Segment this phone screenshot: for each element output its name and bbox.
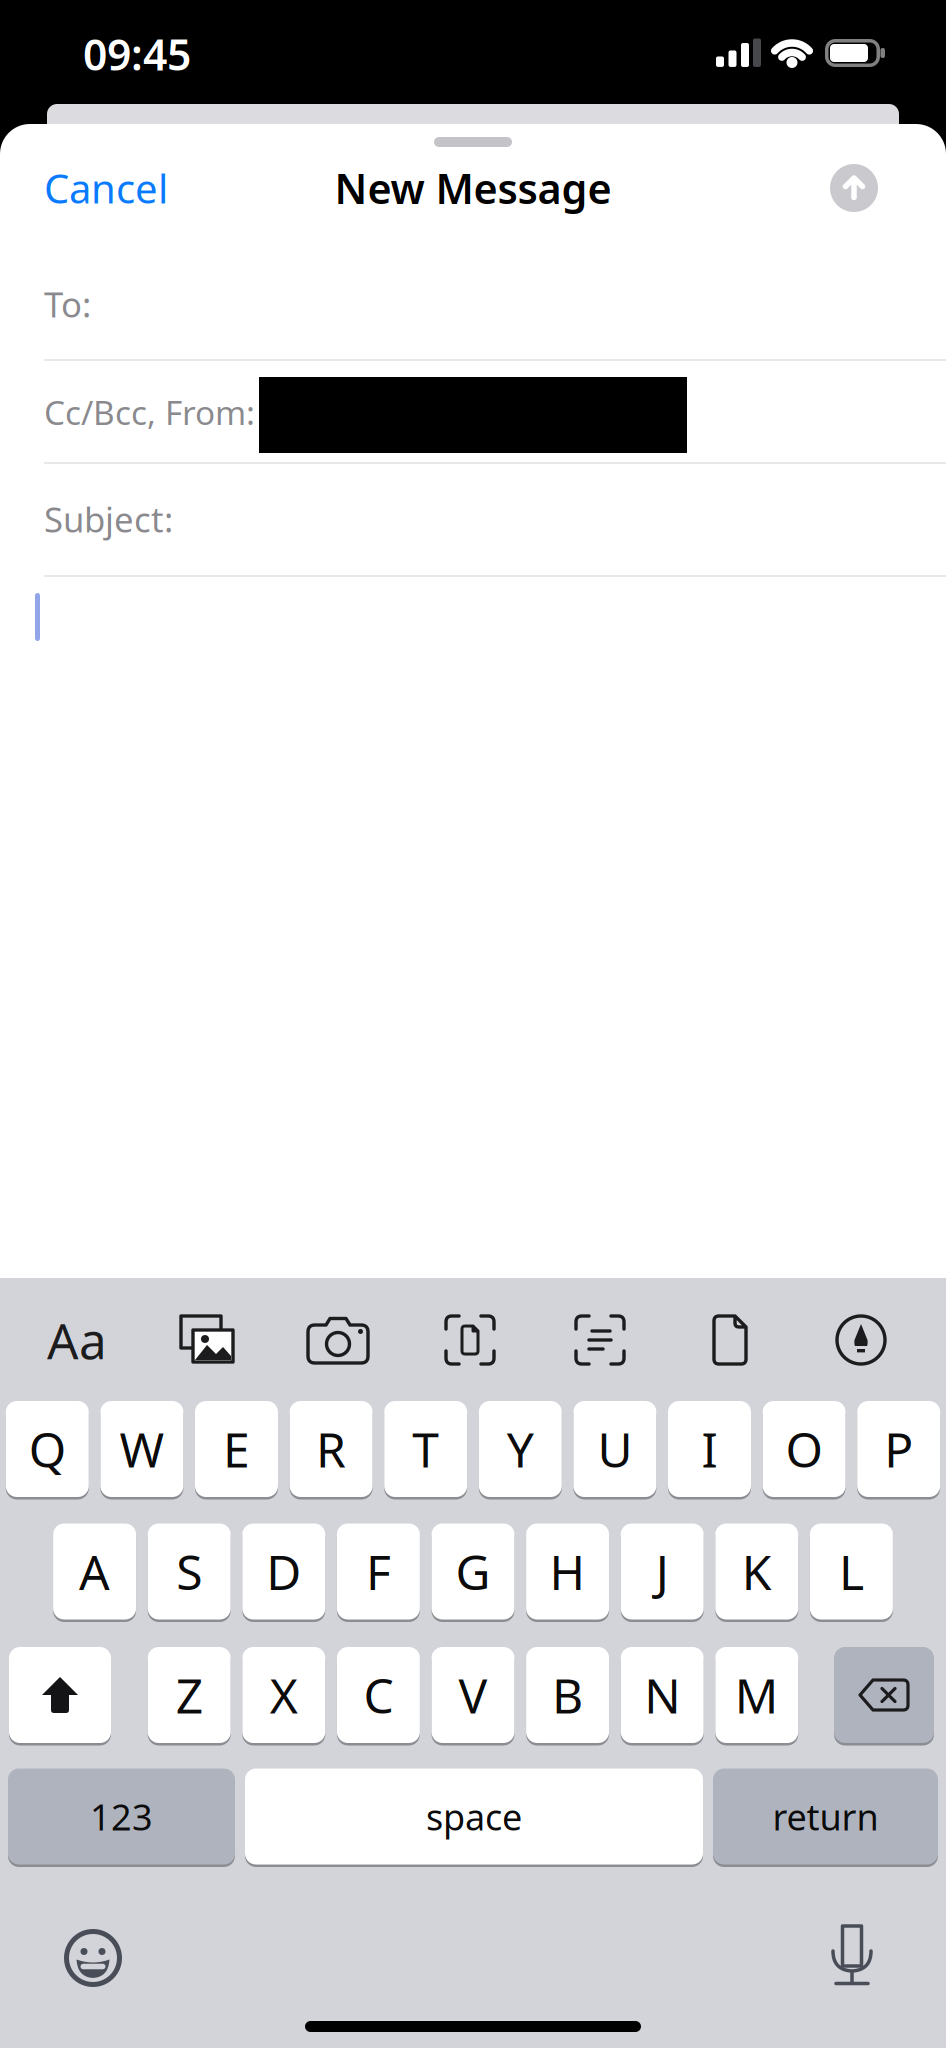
button[interactable]: Subject: [44, 496, 464, 542]
button[interactable]: Attach File [702, 1311, 758, 1369]
staticText: N [644, 1663, 680, 1727]
button[interactable]: Cancel [44, 161, 344, 214]
button[interactable]: I [668, 1399, 751, 1498]
staticText: To: [44, 281, 91, 327]
button[interactable]: G [431, 1522, 514, 1621]
button[interactable]: Send [830, 164, 878, 212]
staticText: R [316, 1417, 346, 1481]
staticText: New Message [334, 161, 611, 215]
staticText: K [742, 1540, 772, 1603]
button[interactable]: To: [44, 281, 464, 327]
button[interactable]: R [290, 1399, 373, 1498]
button[interactable]: P [857, 1399, 940, 1498]
button[interactable]: Scan Text [572, 1312, 628, 1368]
staticText: S [176, 1540, 202, 1603]
staticText: G [455, 1540, 490, 1603]
button[interactable]: B [526, 1645, 609, 1744]
staticText: M [735, 1663, 779, 1727]
button[interactable]: Cc/Bcc, From: [44, 390, 464, 434]
staticText: return [772, 1793, 878, 1840]
button[interactable]: W [100, 1399, 183, 1498]
button[interactable]: D [242, 1522, 325, 1621]
button[interactable]: Emoji [61, 1926, 125, 1990]
button[interactable]: Y [479, 1399, 562, 1498]
staticText: Subject: [44, 496, 173, 542]
staticText: D [266, 1540, 301, 1603]
button[interactable]: Q [6, 1399, 89, 1498]
button[interactable]: L [810, 1522, 893, 1621]
button[interactable]: Scan Document [442, 1312, 498, 1368]
button[interactable]: J [621, 1522, 704, 1621]
staticText: W [119, 1417, 164, 1481]
button[interactable]: Insert Photo [175, 1312, 239, 1368]
button[interactable]: F [337, 1522, 420, 1621]
staticText: I [701, 1417, 717, 1481]
staticText: 123 [90, 1793, 153, 1840]
button[interactable]: U [573, 1399, 656, 1498]
button[interactable]: V [431, 1645, 514, 1744]
staticText: O [786, 1417, 823, 1481]
button[interactable]: space [245, 1767, 703, 1866]
staticText: P [884, 1417, 913, 1481]
button[interactable]: M [715, 1645, 798, 1744]
button[interactable]: Delete [834, 1645, 934, 1744]
button[interactable]: O [763, 1399, 846, 1498]
button[interactable]: Z [148, 1645, 231, 1744]
button[interactable]: Text Formatting [47, 1307, 107, 1373]
staticText: Q [29, 1417, 66, 1481]
staticText: F [366, 1540, 391, 1603]
button[interactable]: Shift [9, 1645, 111, 1744]
button[interactable]: C [337, 1645, 420, 1744]
staticText: Y [507, 1417, 534, 1481]
staticText: Cc/Bcc, From: [44, 390, 255, 434]
staticText: L [839, 1540, 864, 1603]
button[interactable]: T [384, 1399, 467, 1498]
staticText: E [223, 1417, 250, 1481]
staticText: 09:45 [83, 26, 191, 82]
staticText: space [426, 1793, 522, 1840]
button[interactable]: 123 [8, 1767, 235, 1866]
staticText: H [550, 1540, 586, 1603]
staticText: U [597, 1417, 632, 1481]
button[interactable]: A [53, 1522, 136, 1621]
staticText: A [79, 1540, 110, 1603]
staticText: C [363, 1663, 393, 1727]
button[interactable]: return [713, 1767, 938, 1866]
button[interactable]: N [621, 1645, 704, 1744]
staticText: Aa [47, 1307, 107, 1373]
button[interactable]: E [195, 1399, 278, 1498]
staticText: B [552, 1663, 583, 1727]
button[interactable]: Markup [833, 1312, 889, 1368]
button[interactable]: X [242, 1645, 325, 1744]
button[interactable]: Dictation [828, 1922, 876, 1986]
staticText: V [458, 1663, 487, 1727]
button[interactable]: S [148, 1522, 231, 1621]
staticText: T [412, 1417, 439, 1481]
button[interactable]: K [715, 1522, 798, 1621]
staticText: J [656, 1540, 669, 1603]
staticText: Z [176, 1663, 203, 1727]
staticText: Cancel [44, 161, 168, 214]
button[interactable]: H [526, 1522, 609, 1621]
button[interactable]: Take Photo [304, 1315, 372, 1367]
staticText: X [270, 1663, 298, 1727]
